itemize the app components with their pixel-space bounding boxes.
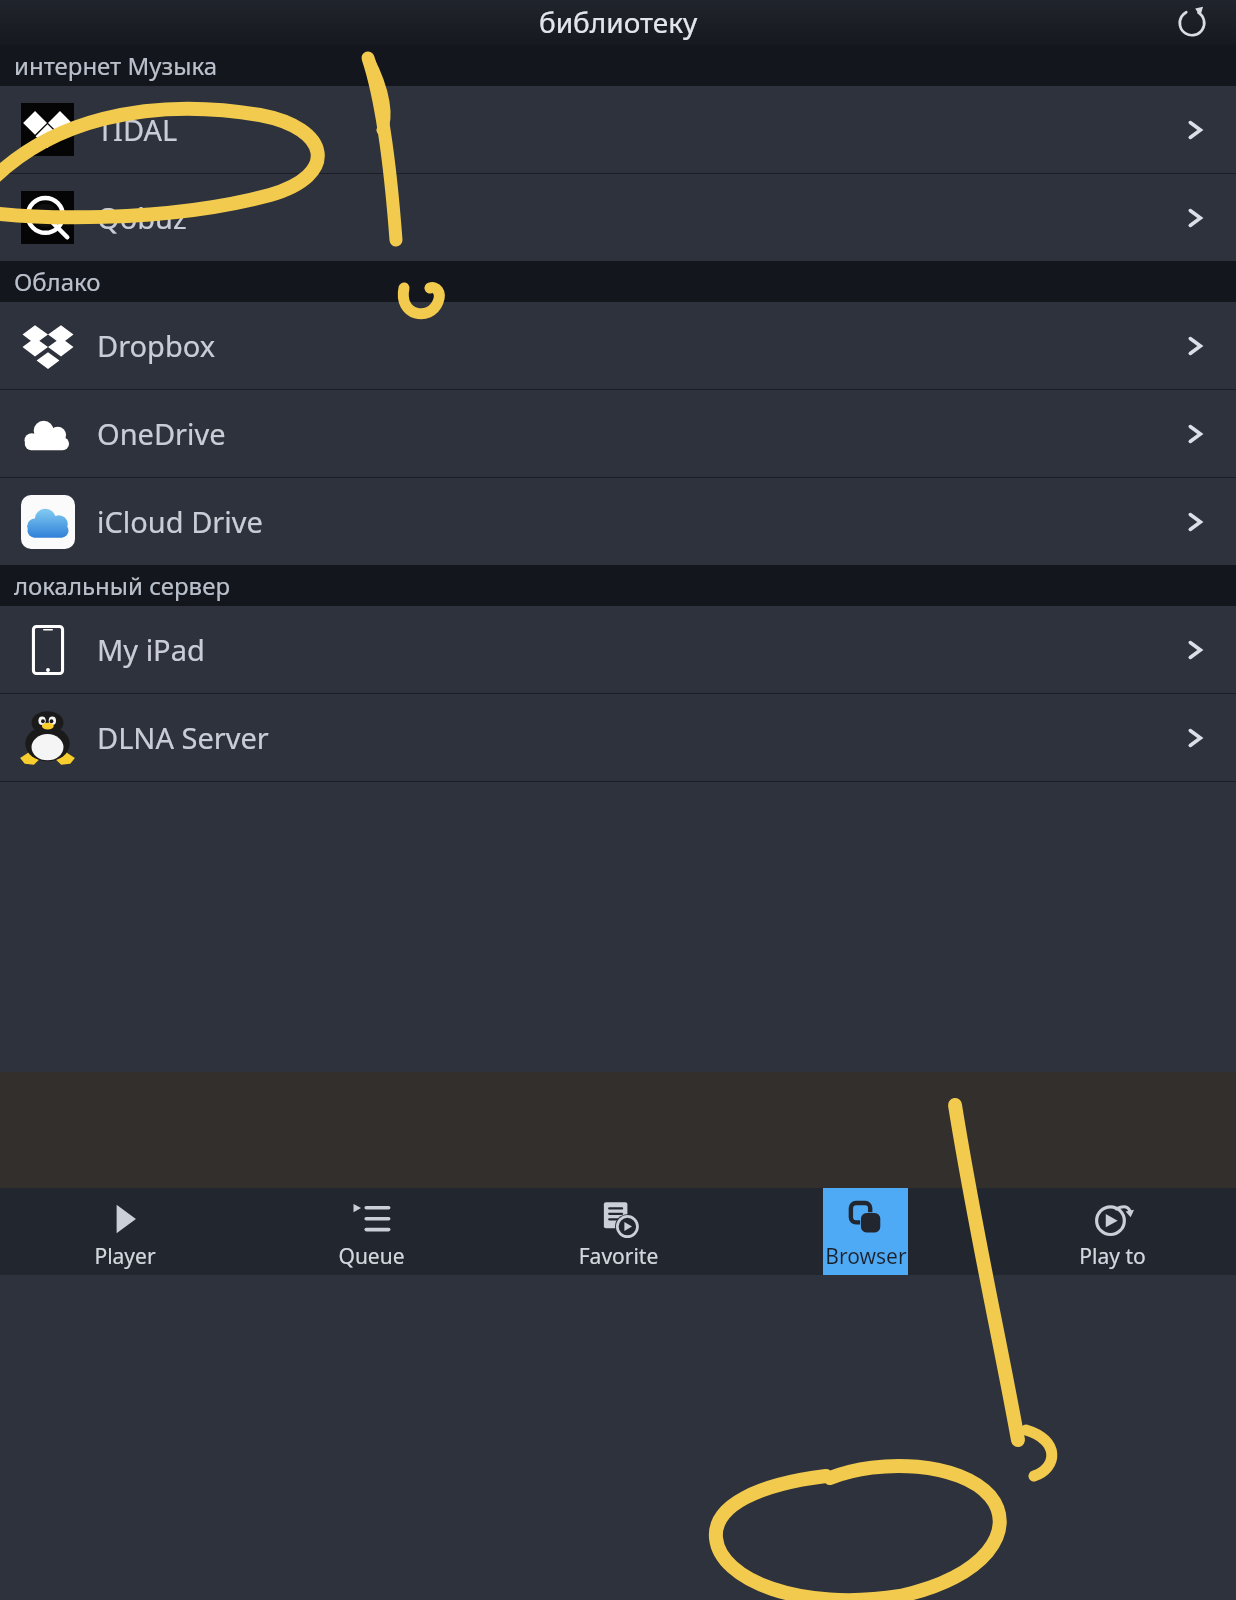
button[interactable]: iCloud Drive (0, 478, 1236, 565)
staticText: My iPad (97, 630, 1178, 669)
button[interactable]: Queue (329, 1188, 414, 1275)
staticText: библиотеку (539, 3, 698, 41)
staticText: OneDrive (97, 414, 1178, 453)
staticText: интернет Музыка (14, 49, 218, 82)
button[interactable]: Dropbox (0, 302, 1236, 389)
staticText: Dropbox (97, 326, 1178, 365)
button[interactable]: Favorites (576, 1188, 661, 1275)
button[interactable]: Refresh (1174, 5, 1210, 41)
button[interactable]: DLNA Server (0, 694, 1236, 781)
button[interactable]: Player (82, 1188, 167, 1275)
button[interactable]: My iPad (0, 606, 1236, 693)
button[interactable]: OneDrive (0, 390, 1236, 477)
staticText: DLNA Server (97, 718, 1178, 757)
staticText: Queue (338, 1242, 405, 1271)
button[interactable]: Play to (1070, 1188, 1155, 1275)
staticText: Облако (14, 265, 101, 298)
staticText: локальный сервер (14, 569, 230, 602)
staticText: Favorites (576, 1242, 661, 1275)
button[interactable]: Qobuz (0, 174, 1236, 261)
staticText: Browser (825, 1242, 907, 1271)
staticText: Qobuz (97, 198, 1178, 237)
staticText: iCloud Drive (97, 502, 1178, 541)
staticText: Play to (1079, 1242, 1146, 1271)
staticText: Player (94, 1242, 156, 1271)
staticText: TIDAL (97, 110, 1178, 149)
button[interactable]: Browser (823, 1188, 908, 1275)
button[interactable]: TIDAL (0, 86, 1236, 173)
